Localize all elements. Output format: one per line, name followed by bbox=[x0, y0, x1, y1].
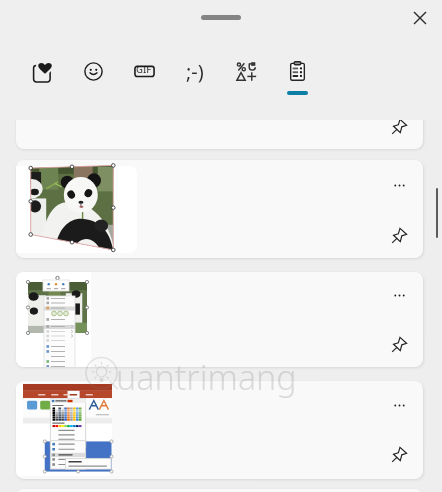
button[interactable]: Pin item bbox=[385, 111, 414, 140]
button[interactable]: Favorites bbox=[23, 52, 61, 90]
button[interactable]: See more bbox=[385, 171, 414, 200]
staticText: ;-) bbox=[186, 58, 204, 85]
button[interactable]: Pin item bbox=[16, 160, 423, 258]
button[interactable]: Kaomoji bbox=[176, 52, 214, 90]
button[interactable]: Pin item bbox=[385, 220, 414, 249]
button[interactable]: See more bbox=[385, 391, 414, 420]
button[interactable]: See more bbox=[385, 281, 414, 310]
button[interactable]: Symbols bbox=[227, 52, 265, 90]
button[interactable]: GIF bbox=[125, 52, 163, 90]
button[interactable]: Pin item bbox=[385, 329, 414, 358]
staticText: GIF bbox=[136, 63, 152, 76]
button[interactable]: Pin item bbox=[16, 381, 423, 479]
button[interactable]: Pin item bbox=[385, 439, 414, 468]
button[interactable]: Pin item bbox=[16, 100, 423, 149]
button[interactable]: Clipboard history bbox=[278, 52, 316, 90]
button[interactable]: Pin item bbox=[16, 272, 423, 367]
button[interactable]: Close bbox=[406, 4, 434, 32]
staticText: uantrimang bbox=[116, 354, 297, 400]
button[interactable]: Emoji bbox=[74, 52, 112, 90]
